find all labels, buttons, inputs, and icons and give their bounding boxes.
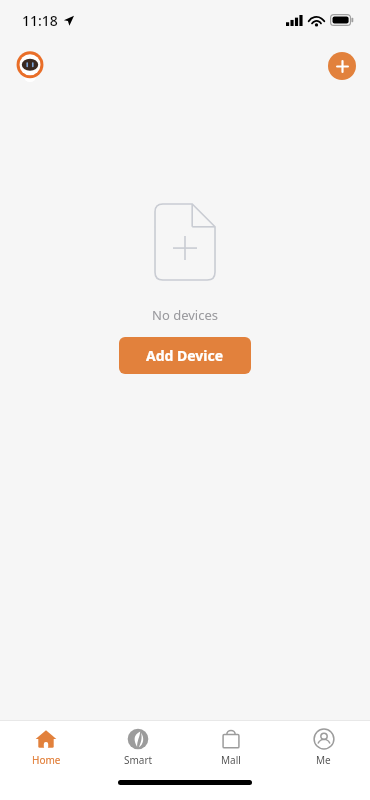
- button[interactable]: Home assistant: [13, 49, 47, 83]
- staticText: Me: [316, 753, 331, 767]
- staticText: Home: [32, 753, 61, 767]
- staticText: No devices: [152, 306, 218, 324]
- staticText: Smart: [124, 753, 153, 767]
- staticText: 11:18: [22, 11, 58, 30]
- button[interactable]: Add Device: [119, 337, 251, 374]
- button[interactable]: Mall: [184, 724, 277, 771]
- staticText: Add Device: [146, 346, 224, 365]
- button[interactable]: Smart: [92, 724, 184, 771]
- button[interactable]: Me: [277, 724, 370, 771]
- button[interactable]: Add: [328, 52, 356, 80]
- button[interactable]: Home: [0, 724, 92, 771]
- staticText: Mall: [221, 753, 241, 767]
